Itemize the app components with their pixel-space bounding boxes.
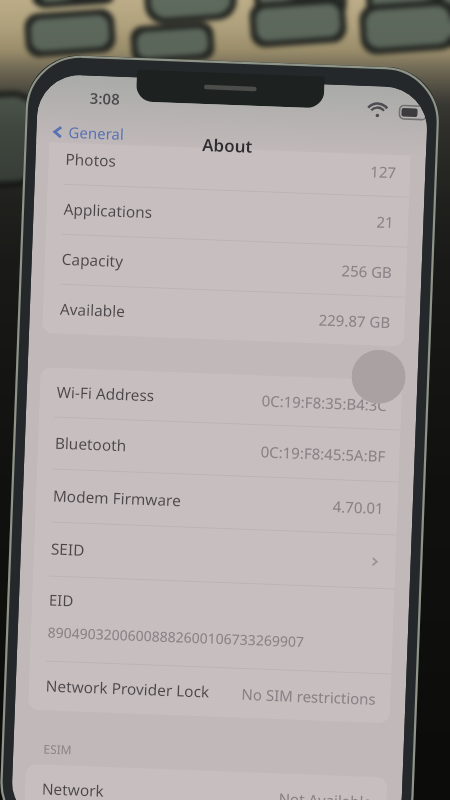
staticText: 21: [376, 212, 395, 232]
staticText: 0C:19:F8:35:B4:3C: [261, 390, 388, 415]
button[interactable]: Photos: [48, 134, 411, 197]
staticText: 4.70.01: [332, 496, 384, 518]
staticText: 127: [370, 161, 397, 182]
staticText: ESIM: [43, 740, 73, 757]
staticText: 256 GB: [341, 260, 393, 282]
staticText: Capacity: [61, 249, 124, 272]
staticText: Wi-Fi Address: [56, 382, 155, 406]
staticText: 89049032006008882600106733269907: [47, 622, 305, 651]
button[interactable]: Network Provider Lock: [28, 661, 391, 723]
button[interactable]: SEID: [33, 522, 397, 588]
staticText: Photos: [65, 149, 117, 172]
staticText: 0C:19:F8:45:5A:BF: [260, 441, 386, 466]
staticText: Network Provider Lock: [45, 675, 210, 703]
button[interactable]: Available: [42, 284, 406, 347]
button[interactable]: Network: [24, 764, 388, 800]
button[interactable]: EID: [30, 576, 395, 673]
button[interactable]: General: [50, 121, 125, 144]
staticText: Modem Firmware: [52, 486, 181, 511]
staticText: SEID: [50, 539, 85, 561]
staticText: 3:08: [89, 88, 120, 109]
staticText: No SIM restrictions: [241, 684, 377, 709]
button[interactable]: AssistiveTouch: [351, 349, 407, 405]
staticText: 229.87 GB: [318, 309, 391, 332]
button[interactable]: Applications: [46, 184, 409, 247]
staticText: Applications: [63, 199, 153, 223]
staticText: About: [202, 133, 253, 158]
staticText: Network: [41, 778, 104, 800]
button[interactable]: Capacity: [44, 234, 407, 297]
button[interactable]: Modem Firmware: [35, 469, 399, 534]
button[interactable]: Wi-Fi Address: [39, 367, 402, 430]
button[interactable]: Bluetooth: [37, 417, 401, 481]
staticText: Not Available: [278, 788, 373, 800]
staticText: Bluetooth: [54, 433, 127, 456]
staticText: General: [68, 122, 125, 144]
staticText: Available: [59, 299, 125, 322]
staticText: EID: [49, 589, 74, 610]
